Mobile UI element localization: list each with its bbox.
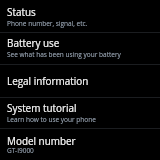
button[interactable]: Battery use <box>0 32 160 63</box>
staticText: Phone number, signal, etc. <box>7 19 88 28</box>
staticText: System tutorial <box>7 101 77 114</box>
staticText: Learn how to use your phone <box>7 115 96 124</box>
button[interactable]: Status <box>0 0 160 31</box>
staticText: Status <box>7 5 36 18</box>
button[interactable]: Model number <box>0 128 160 160</box>
button[interactable]: Legal information <box>0 64 160 96</box>
button[interactable]: System tutorial <box>0 97 160 127</box>
staticText: GT-I9000 <box>7 146 34 155</box>
staticText: Battery use <box>7 36 60 49</box>
staticText: Model number <box>7 134 76 147</box>
staticText: See what has been using your battery <box>7 50 121 59</box>
staticText: Legal information <box>7 74 89 87</box>
